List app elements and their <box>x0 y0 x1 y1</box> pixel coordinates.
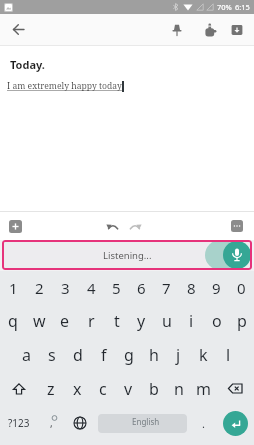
staticText: 0 <box>237 278 246 298</box>
staticText: p <box>237 310 247 332</box>
button[interactable]: c <box>90 372 116 406</box>
staticText: 4 <box>87 278 96 298</box>
button[interactable]: t <box>104 304 129 338</box>
button[interactable]: r <box>78 304 104 338</box>
staticText: 1 <box>9 278 18 298</box>
button[interactable]: q <box>0 304 26 338</box>
staticText: u <box>162 310 172 332</box>
button[interactable]: j <box>166 338 191 372</box>
staticText: . <box>202 416 205 431</box>
button[interactable] <box>0 372 38 406</box>
button[interactable] <box>231 24 243 36</box>
button[interactable]: o <box>204 304 229 338</box>
button[interactable] <box>106 220 119 233</box>
staticText: 7 <box>162 278 171 298</box>
staticText: 2 <box>35 278 44 298</box>
button[interactable] <box>129 220 142 233</box>
button[interactable] <box>9 220 22 233</box>
button[interactable]: 3 <box>52 271 78 304</box>
button[interactable]: 0 <box>229 271 254 304</box>
button[interactable]: 4 <box>78 271 104 304</box>
button[interactable]: 8 <box>179 271 204 304</box>
staticText: k <box>199 344 208 366</box>
staticText: a <box>22 344 31 366</box>
staticText: y <box>137 310 146 332</box>
button[interactable]: k <box>191 338 216 372</box>
staticText: z <box>47 378 55 400</box>
staticText: f <box>101 344 107 366</box>
button[interactable]: 6 <box>129 271 154 304</box>
button[interactable]: u <box>154 304 179 338</box>
button[interactable]: 1 <box>0 271 26 304</box>
staticText: v <box>124 378 133 400</box>
button[interactable]: . <box>190 406 216 440</box>
staticText: m <box>196 378 211 400</box>
staticText: x <box>73 378 82 400</box>
button[interactable]: l <box>216 338 241 372</box>
button[interactable]: g <box>116 338 141 372</box>
button[interactable]: , <box>38 406 65 440</box>
button[interactable]: Listening... <box>2 240 252 270</box>
staticText: 8 <box>187 278 196 298</box>
button[interactable]: s <box>39 338 65 372</box>
staticText: Listening... <box>103 249 152 262</box>
button[interactable]: 5 <box>104 271 129 304</box>
button[interactable]: 2 <box>26 271 52 304</box>
staticText: i <box>189 310 194 332</box>
staticText: n <box>174 378 184 400</box>
button[interactable]: m <box>191 372 216 406</box>
button[interactable] <box>65 406 95 440</box>
button[interactable]: f <box>91 338 116 372</box>
staticText: o <box>212 310 222 332</box>
button[interactable]: n <box>166 372 191 406</box>
staticText: d <box>73 344 83 366</box>
staticText: Today. <box>10 57 45 72</box>
staticText: w <box>33 310 46 332</box>
button[interactable]: d <box>65 338 91 372</box>
button[interactable] <box>231 220 243 232</box>
staticText: ?123 <box>8 416 30 430</box>
staticText: 9 <box>212 278 221 298</box>
staticText: r <box>88 310 95 332</box>
button[interactable] <box>216 406 254 440</box>
button[interactable]: v <box>116 372 141 406</box>
button[interactable]: 7 <box>154 271 179 304</box>
button[interactable] <box>12 23 25 36</box>
staticText: c <box>99 378 107 400</box>
staticText: I am extremely happy today <box>7 80 122 92</box>
staticText: 5 <box>112 278 121 298</box>
staticText: h <box>149 344 159 366</box>
button[interactable]: ?123 <box>0 406 38 440</box>
staticText: English <box>132 416 160 427</box>
staticText: l <box>226 344 231 366</box>
staticText: t <box>114 310 120 332</box>
button[interactable]: h <box>141 338 166 372</box>
staticText: b <box>149 378 159 400</box>
button[interactable] <box>203 23 217 37</box>
staticText: 6:15 <box>235 2 250 12</box>
button[interactable]: i <box>179 304 204 338</box>
staticText: q <box>8 310 18 332</box>
button[interactable]: w <box>26 304 52 338</box>
button[interactable]: y <box>129 304 154 338</box>
staticText: s <box>48 344 56 366</box>
staticText: , <box>50 416 53 430</box>
button[interactable]: e <box>52 304 78 338</box>
button[interactable]: b <box>141 372 166 406</box>
button[interactable]: x <box>64 372 90 406</box>
staticText: 3 <box>61 278 70 298</box>
button[interactable]: English <box>98 414 187 433</box>
button[interactable] <box>216 372 254 406</box>
staticText: g <box>124 344 134 366</box>
button[interactable]: z <box>38 372 64 406</box>
button[interactable] <box>171 24 183 36</box>
button[interactable]: p <box>229 304 254 338</box>
staticText: 6 <box>137 278 146 298</box>
button[interactable]: a <box>13 338 39 372</box>
staticText: e <box>60 310 70 332</box>
staticText: 70% <box>217 2 232 12</box>
button[interactable]: 9 <box>204 271 229 304</box>
staticText: j <box>176 344 181 366</box>
